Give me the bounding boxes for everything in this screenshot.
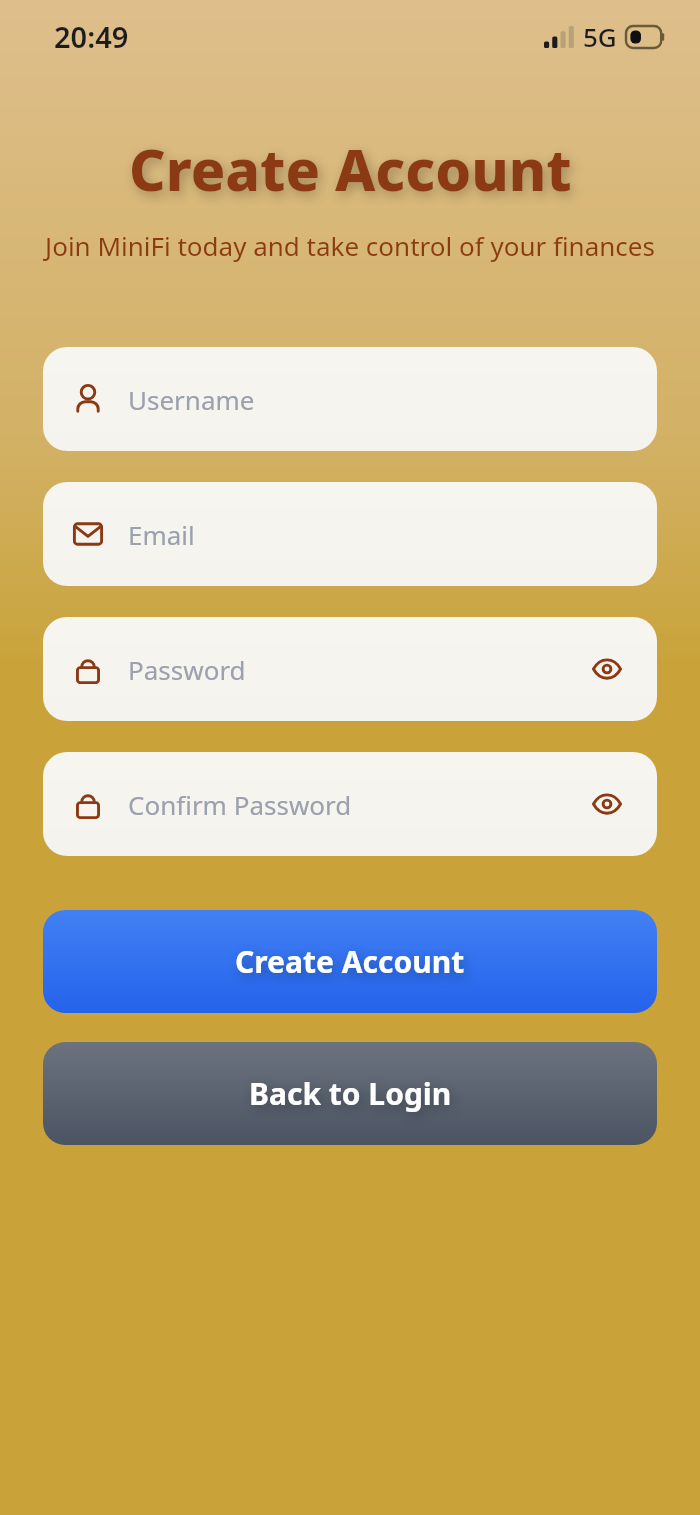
staticText: Username	[128, 382, 255, 417]
button[interactable]: Password	[43, 617, 657, 721]
button[interactable]: Back to Login	[43, 1042, 657, 1145]
staticText: Confirm Password	[128, 787, 352, 822]
staticText: Password	[128, 652, 246, 687]
button[interactable]: Username	[43, 347, 657, 451]
staticText: 20:49	[54, 17, 129, 56]
staticText: Back to Login	[249, 1073, 452, 1114]
button[interactable]: Show password	[585, 647, 629, 691]
staticText: Join MiniFi today and take control of yo…	[45, 228, 655, 263]
button[interactable]: Confirm Password	[43, 752, 657, 856]
staticText: Create Account	[235, 941, 465, 982]
staticText: Create Account	[129, 130, 572, 208]
staticText: Email	[128, 517, 195, 552]
staticText: 5G	[583, 19, 617, 54]
button[interactable]: Create Account	[43, 910, 657, 1013]
button[interactable]: Show password	[585, 782, 629, 826]
button[interactable]: Email	[43, 482, 657, 586]
